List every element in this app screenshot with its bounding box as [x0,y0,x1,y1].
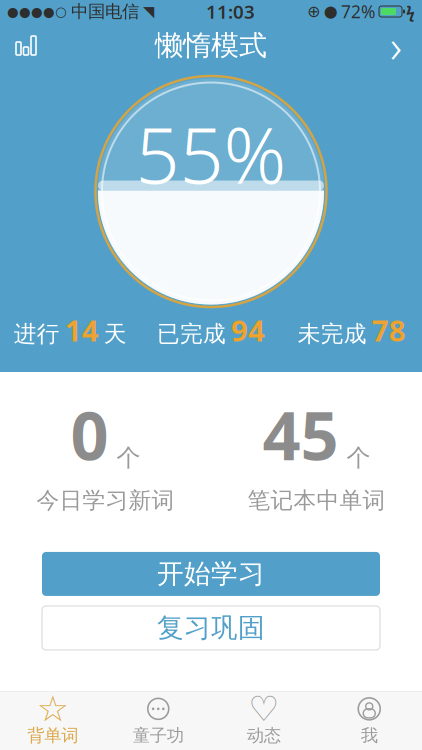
button[interactable]: 开始学习 [42,552,380,596]
button[interactable]: ☆ [0,692,105,750]
staticText: 55% [135,102,286,205]
button[interactable]: 童子功 [105,692,211,750]
staticText: 94 [231,310,265,349]
button[interactable]: 切换模式 [370,24,422,66]
staticText: 动态 [247,725,281,746]
staticText: 今日学习新词 [36,486,174,514]
staticText: ϟ [406,1,415,22]
staticText: 已完成 [157,320,226,348]
staticText: 笔记本中单词 [247,486,385,514]
staticText: 11:03 [206,0,255,24]
staticText: 童子功 [133,725,184,746]
staticText: 未完成 [298,320,367,348]
staticText: 我 [361,725,378,746]
staticText: 懒惰模式 [155,28,267,63]
staticText: 78 [372,310,406,349]
staticText: ⊕ [307,2,320,21]
staticText: 复习巩固 [157,612,265,644]
staticText: › [390,15,402,76]
button[interactable]: 复习巩固 [42,606,380,650]
staticText: 个 [346,443,370,473]
staticText: 45 [262,390,338,478]
staticText: ⬤ [324,5,337,18]
staticText: ◥ [143,3,154,20]
button[interactable]: 学习统计 [0,24,52,66]
staticText: ●●●●○ [7,4,67,19]
staticText: 14 [65,310,99,349]
staticText: 个 [116,443,140,473]
staticText: 0 [70,390,108,478]
staticText: 天 [104,320,127,348]
staticText: 72% [341,0,375,23]
staticText: ☆ [37,688,69,729]
staticText: ♡ [248,689,279,728]
staticText: 中国电信 [71,1,139,22]
button[interactable]: ♡ [211,692,316,750]
staticText: 进行 [14,320,60,348]
staticText: 背单词 [27,725,78,746]
staticText: 开始学习 [157,558,265,590]
button[interactable]: 我 [316,692,422,750]
